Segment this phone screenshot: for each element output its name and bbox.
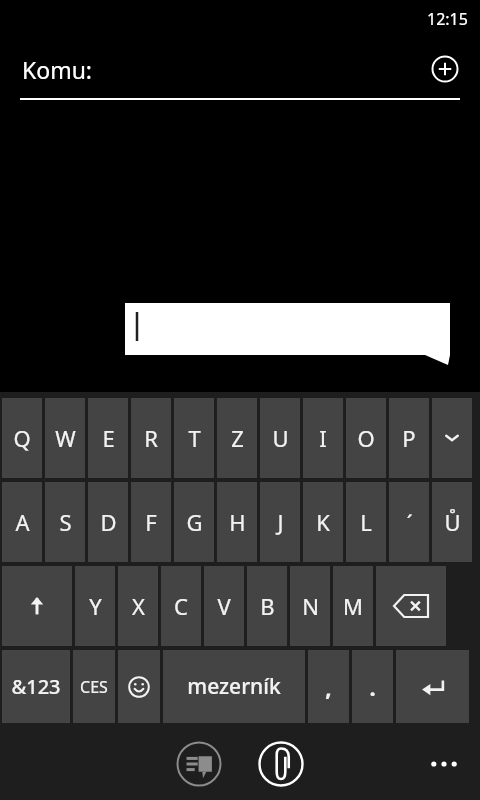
staticText: V — [217, 591, 231, 621]
staticText: P — [402, 423, 416, 453]
staticText: mezerník — [187, 672, 281, 701]
button[interactable]: T — [174, 398, 214, 478]
staticText: B — [260, 591, 275, 621]
staticText: I — [319, 423, 327, 453]
button[interactable]: G — [174, 482, 214, 562]
button[interactable]: A — [2, 482, 42, 562]
staticText: U — [272, 423, 289, 453]
button[interactable]: H — [217, 482, 257, 562]
staticText: ´ — [406, 507, 413, 537]
button[interactable]: Q — [2, 398, 42, 478]
button[interactable]: S — [45, 482, 85, 562]
button[interactable]: Z — [217, 398, 257, 478]
staticText: W — [55, 423, 76, 453]
button[interactable]: C — [161, 566, 201, 646]
staticText: 12:15 — [427, 8, 468, 30]
button[interactable]: U — [260, 398, 300, 478]
button[interactable]: &123 — [2, 650, 70, 723]
staticText: N — [302, 591, 319, 621]
button[interactable]: ´ — [389, 482, 429, 562]
button[interactable]: Ů — [432, 482, 472, 562]
staticText: Komu: — [22, 54, 93, 85]
button[interactable]: Shift — [2, 566, 72, 646]
button[interactable]: Backspace — [376, 566, 446, 646]
button[interactable]: Enter — [396, 650, 469, 723]
button[interactable]: J — [260, 482, 300, 562]
button[interactable]: R — [131, 398, 171, 478]
button[interactable]: X — [118, 566, 158, 646]
button[interactable]: K — [303, 482, 343, 562]
staticText: X — [132, 591, 145, 621]
button[interactable]: More options — [422, 742, 466, 786]
button[interactable]: . — [352, 650, 393, 723]
button[interactable]: mezerník — [163, 650, 305, 723]
staticText: K — [316, 507, 330, 537]
staticText: D — [100, 507, 117, 537]
button[interactable]: N — [290, 566, 330, 646]
staticText: T — [188, 423, 201, 453]
staticText: O — [357, 423, 375, 453]
staticText: Ů — [444, 507, 461, 537]
staticText: S — [59, 507, 72, 537]
staticText: J — [277, 507, 284, 537]
staticText: C — [174, 591, 188, 621]
button[interactable]: D — [88, 482, 128, 562]
button[interactable]: F — [131, 482, 171, 562]
button[interactable]: V — [204, 566, 244, 646]
button[interactable]: M — [333, 566, 373, 646]
staticText: H — [229, 507, 246, 537]
button[interactable]: Attach — [256, 739, 306, 789]
button[interactable]: L — [346, 482, 386, 562]
staticText: L — [360, 507, 372, 537]
staticText: R — [144, 423, 158, 453]
staticText: A — [15, 507, 30, 537]
button[interactable]: , — [308, 650, 349, 723]
staticText: , — [325, 672, 332, 702]
staticText: E — [102, 423, 115, 453]
button[interactable]: B — [247, 566, 287, 646]
staticText: Y — [89, 591, 102, 621]
staticText: Q — [13, 423, 31, 453]
staticText: F — [145, 507, 157, 537]
button[interactable]: Y — [75, 566, 115, 646]
button[interactable]: Emoji — [118, 650, 160, 723]
staticText: M — [343, 591, 363, 621]
staticText: Z — [231, 423, 244, 453]
button[interactable]: P — [389, 398, 429, 478]
staticText: &123 — [11, 673, 61, 700]
staticText: . — [369, 672, 376, 702]
staticText: G — [186, 507, 203, 537]
button[interactable]: O — [346, 398, 386, 478]
staticText: CES — [80, 676, 108, 698]
button[interactable]: W — [45, 398, 85, 478]
button[interactable]: E — [88, 398, 128, 478]
button[interactable]: I — [303, 398, 343, 478]
button[interactable]: CES — [73, 650, 115, 723]
button[interactable]: Hide keyboard — [432, 398, 472, 478]
button[interactable]: Send message — [174, 739, 224, 789]
button[interactable]: Add recipient — [430, 54, 460, 84]
